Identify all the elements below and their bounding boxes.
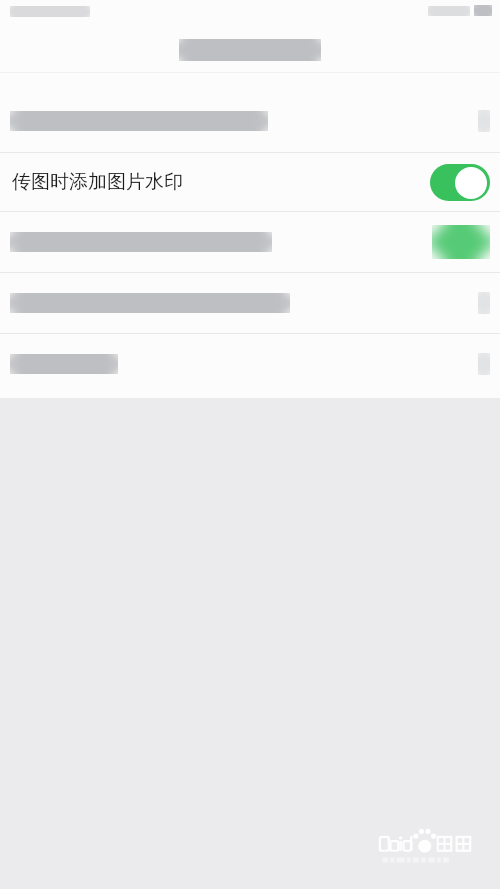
button[interactable]: 传图时添加图片水印: [0, 153, 500, 211]
button[interactable]: [0, 212, 500, 272]
button[interactable]: [0, 273, 500, 333]
button[interactable]: [0, 334, 500, 394]
button[interactable]: 传图时添加图片水印开关: [430, 164, 490, 201]
staticText: 传图时添加图片水印: [12, 170, 183, 194]
button[interactable]: [0, 90, 500, 152]
